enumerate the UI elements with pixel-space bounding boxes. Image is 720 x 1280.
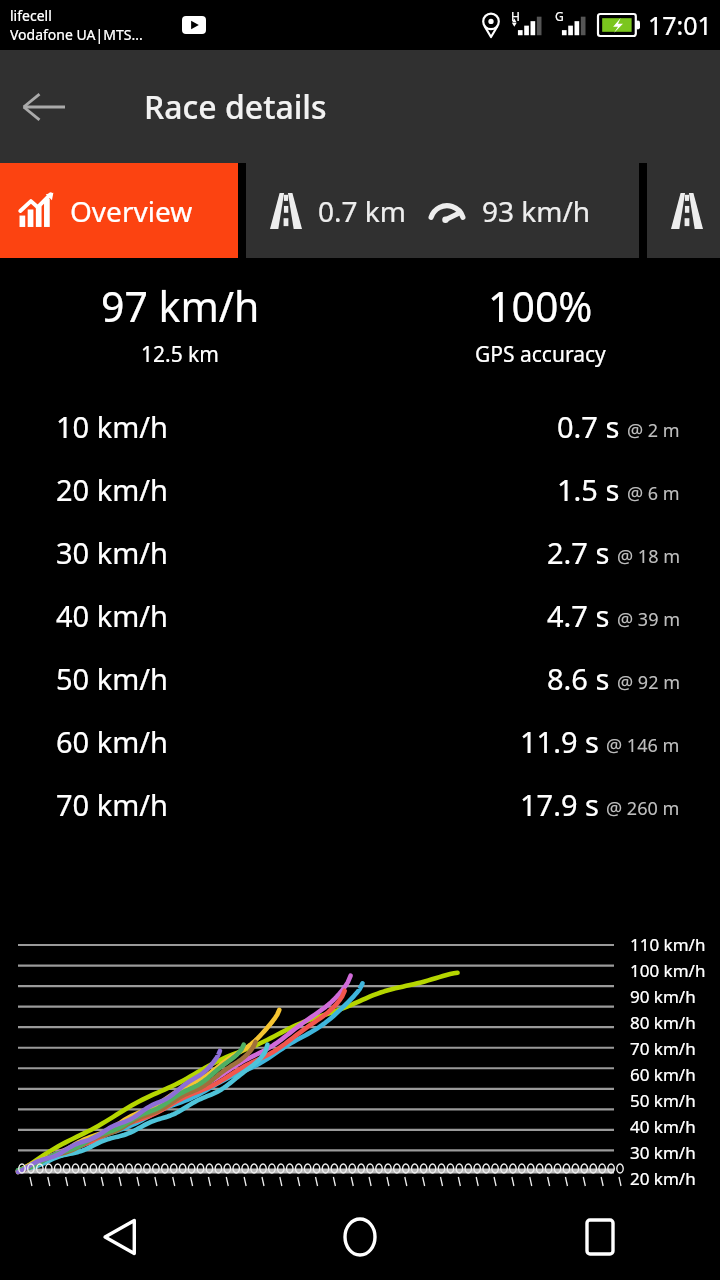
staticText: Overview: [70, 192, 193, 230]
staticText: @ 6 m: [627, 481, 680, 506]
staticText: @ 18 m: [617, 544, 680, 569]
staticText: 1.5 s: [557, 470, 620, 509]
staticText: @ 260 m: [606, 796, 680, 821]
button[interactable]: Home: [240, 1194, 480, 1280]
staticText: lifecell: [10, 6, 52, 25]
staticText: 50 km/h: [56, 659, 169, 698]
staticText: 40 km/h: [630, 1115, 696, 1138]
staticText: @ 39 m: [617, 607, 680, 632]
staticText: 40 km/h: [56, 596, 169, 635]
staticText: 60 km/h: [56, 722, 169, 761]
staticText: 20 km/h: [630, 1167, 696, 1190]
staticText: 0.7 s: [557, 407, 620, 446]
staticText: GPS accuracy: [475, 340, 606, 369]
staticText: @ 2 m: [627, 418, 680, 443]
staticText: Vodafone UA|MTS...: [10, 25, 143, 44]
button[interactable]: Recent apps: [480, 1194, 720, 1280]
staticText: 2.7 s: [547, 533, 610, 572]
staticText: 30 km/h: [630, 1141, 696, 1164]
button[interactable]: 70 km/h: [0, 773, 720, 836]
staticText: 17:01: [648, 8, 712, 42]
button[interactable]: Back: [0, 1194, 240, 1280]
staticText: 93 km/h: [482, 192, 591, 230]
staticText: G: [555, 8, 564, 24]
button[interactable]: Back: [0, 64, 86, 150]
button[interactable]: 0.7 km: [246, 163, 639, 258]
staticText: 70 km/h: [630, 1037, 696, 1060]
staticText: 97 km/h: [101, 278, 260, 334]
staticText: 0.7 km: [318, 192, 406, 230]
button[interactable]: 50 km/h: [0, 647, 720, 710]
staticText: 12.5 km: [141, 340, 219, 369]
button[interactable]: Overview: [0, 163, 238, 258]
staticText: 70 km/h: [56, 785, 169, 824]
button[interactable]: 10 km/h: [0, 395, 720, 458]
staticText: 80 km/h: [630, 1011, 696, 1034]
staticText: H: [511, 8, 520, 24]
staticText: 90 km/h: [630, 985, 696, 1008]
staticText: 8.6 s: [547, 659, 610, 698]
staticText: 60 km/h: [630, 1063, 696, 1086]
button[interactable]: 30 km/h: [0, 521, 720, 584]
staticText: 4.7 s: [547, 596, 610, 635]
staticText: 30 km/h: [56, 533, 169, 572]
staticText: 17.9 s: [520, 785, 599, 824]
staticText: 10 km/h: [56, 407, 169, 446]
staticText: @ 146 m: [606, 733, 680, 758]
staticText: 50 km/h: [630, 1089, 696, 1112]
staticText: 110 km/h: [630, 933, 706, 956]
staticText: 100%: [488, 278, 593, 334]
staticText: Race details: [144, 85, 327, 129]
staticText: 11.9 s: [520, 722, 599, 761]
staticText: @ 92 m: [617, 670, 680, 695]
button[interactable]: 20 km/h: [0, 458, 720, 521]
button[interactable]: [647, 163, 720, 258]
button[interactable]: 60 km/h: [0, 710, 720, 773]
staticText: 100 km/h: [630, 959, 706, 982]
button[interactable]: 40 km/h: [0, 584, 720, 647]
staticText: 20 km/h: [56, 470, 169, 509]
